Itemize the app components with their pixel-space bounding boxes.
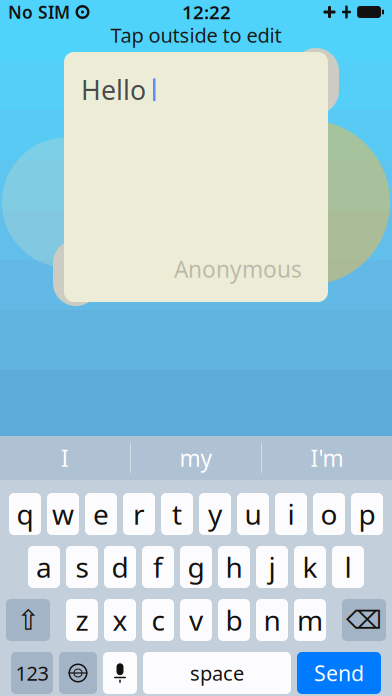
staticText: I xyxy=(61,443,69,473)
button[interactable]: s xyxy=(66,546,98,588)
staticText: w xyxy=(52,495,74,533)
button[interactable]: a xyxy=(28,546,60,588)
staticText: n xyxy=(263,601,280,639)
button[interactable]: h xyxy=(218,546,250,588)
button[interactable]: space xyxy=(143,652,291,694)
staticText: s xyxy=(75,548,88,586)
staticText: my xyxy=(179,443,212,473)
button[interactable]: d xyxy=(104,546,136,588)
staticText: i xyxy=(287,495,294,533)
button[interactable]: i xyxy=(275,493,307,535)
staticText: e xyxy=(93,495,109,533)
button[interactable]: b xyxy=(218,599,250,641)
button[interactable]: Send xyxy=(297,652,381,694)
button[interactable]: my xyxy=(131,436,261,480)
button[interactable]: c xyxy=(142,599,174,641)
staticText: r xyxy=(133,495,145,533)
button[interactable]: m xyxy=(294,599,326,641)
button[interactable]: j xyxy=(256,546,288,588)
button[interactable]: n xyxy=(256,599,288,641)
staticText: y xyxy=(208,495,222,533)
button[interactable]: p xyxy=(351,493,383,535)
staticText: I'm xyxy=(310,443,343,473)
staticText: d xyxy=(111,548,128,586)
staticText: ⌫ xyxy=(346,606,382,634)
button[interactable]: I xyxy=(0,436,130,480)
button[interactable]: Hello xyxy=(64,52,328,302)
staticText: 12:22 xyxy=(182,0,231,24)
staticText: l xyxy=(344,548,351,586)
staticText: h xyxy=(225,548,242,586)
staticText: 123 xyxy=(15,660,48,686)
staticText: space xyxy=(190,660,244,686)
staticText: Tap outside to edit xyxy=(110,22,281,48)
staticText: m xyxy=(297,601,323,639)
button[interactable]: g xyxy=(180,546,212,588)
button[interactable]: r xyxy=(123,493,155,535)
staticText: Hello xyxy=(81,72,146,107)
staticText: g xyxy=(187,548,204,586)
staticText: f xyxy=(153,548,163,586)
staticText: a xyxy=(36,548,52,586)
staticText: Send xyxy=(314,659,364,687)
button[interactable]: k xyxy=(294,546,326,588)
staticText: ⇧ xyxy=(16,604,39,636)
staticText: No SIM xyxy=(8,0,70,23)
staticText: j xyxy=(268,548,275,586)
button[interactable]: w xyxy=(47,493,79,535)
button[interactable]: t xyxy=(161,493,193,535)
staticText: t xyxy=(172,495,182,533)
button[interactable]: u xyxy=(237,493,269,535)
staticText: v xyxy=(189,601,203,639)
button[interactable]: v xyxy=(180,599,212,641)
button[interactable]: Delete xyxy=(342,599,386,641)
staticText: x xyxy=(112,601,127,639)
staticText: k xyxy=(302,548,317,586)
button[interactable]: y xyxy=(199,493,231,535)
staticText: p xyxy=(358,495,375,533)
button[interactable]: l xyxy=(332,546,364,588)
button[interactable]: Shift xyxy=(6,599,50,641)
button[interactable]: q xyxy=(9,493,41,535)
button[interactable]: I'm xyxy=(262,436,392,480)
button[interactable]: Next keyboard xyxy=(59,652,97,694)
staticText: o xyxy=(320,495,337,533)
staticText: q xyxy=(16,495,33,533)
staticText: c xyxy=(151,601,164,639)
staticText: u xyxy=(244,495,261,533)
button[interactable]: z xyxy=(66,599,98,641)
button[interactable]: 123 xyxy=(11,652,53,694)
button[interactable]: f xyxy=(142,546,174,588)
staticText: b xyxy=(225,601,242,639)
button[interactable]: Dictation xyxy=(103,652,137,694)
button[interactable]: o xyxy=(313,493,345,535)
staticText: z xyxy=(75,601,88,639)
button[interactable]: e xyxy=(85,493,117,535)
staticText: Anonymous xyxy=(174,254,302,284)
button[interactable]: x xyxy=(104,599,136,641)
